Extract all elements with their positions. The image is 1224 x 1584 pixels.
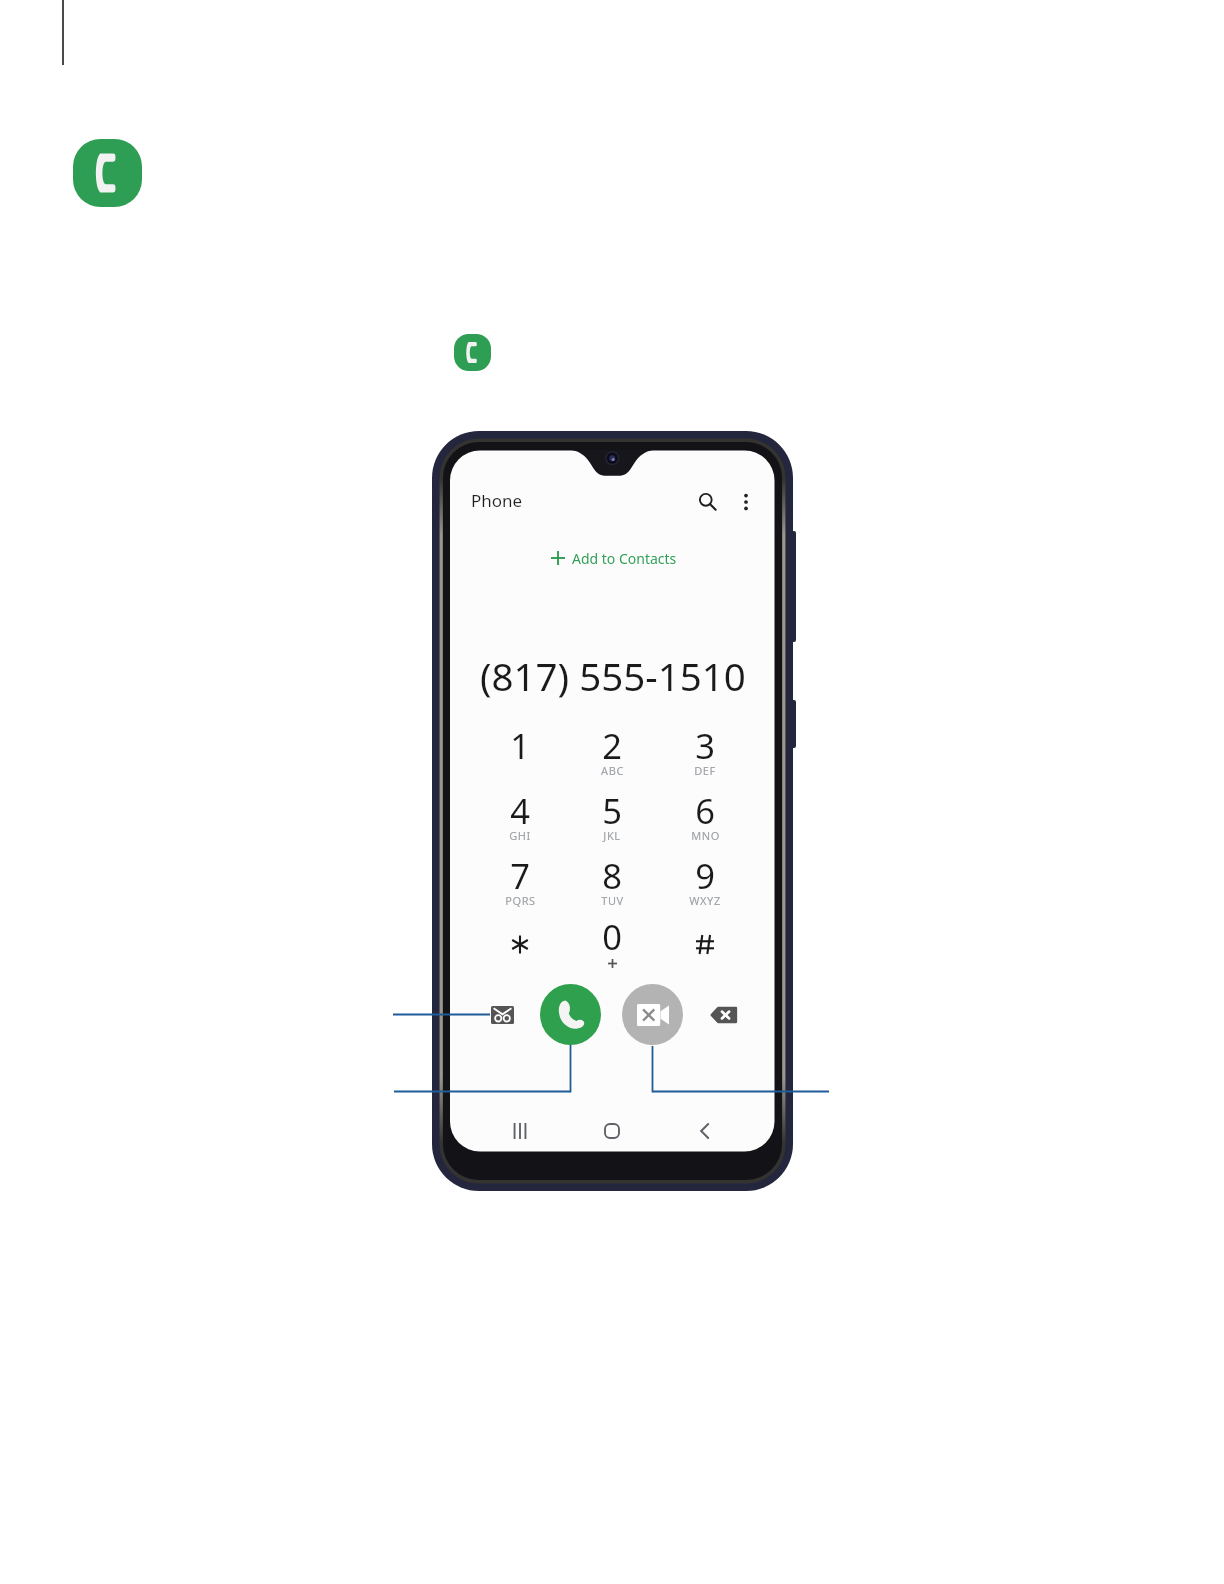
staticText: MNO [691, 828, 720, 843]
button[interactable]: Add to Contacts [551, 545, 677, 571]
button[interactable]: Phone app [454, 334, 491, 371]
button[interactable]: Recents [502, 1113, 538, 1149]
button[interactable]: More options [730, 486, 761, 517]
button[interactable]: 9 [663, 848, 747, 910]
staticText: GHI [509, 828, 531, 843]
staticText: DEF [694, 763, 716, 778]
button[interactable]: 4 [478, 783, 562, 845]
staticText: JKL [603, 828, 621, 843]
button[interactable]: 8 [570, 848, 654, 910]
staticText: 9 [695, 852, 715, 894]
staticText: 4 [510, 787, 530, 829]
button[interactable]: 0 [570, 909, 654, 971]
staticText: PQRS [505, 893, 536, 908]
staticText: 1 [510, 722, 530, 764]
button[interactable]: 7 [478, 848, 562, 910]
staticText: (817) 555-1510 [480, 650, 746, 702]
staticText: Phone [471, 489, 523, 512]
button[interactable]: Phone [471, 487, 523, 513]
staticText: 8 [602, 852, 622, 894]
button[interactable]: 3 [663, 718, 747, 780]
button[interactable]: Backspace [705, 997, 741, 1033]
button[interactable]: Call [540, 984, 601, 1045]
staticText: ABC [601, 763, 624, 778]
button[interactable]: Back [687, 1113, 723, 1149]
button[interactable]: 5 [570, 783, 654, 845]
button[interactable]: Voicemail [484, 997, 520, 1033]
button[interactable]: 6 [663, 783, 747, 845]
button[interactable]: Video call [622, 984, 683, 1045]
staticText: 6 [695, 787, 715, 829]
staticText: 3 [695, 722, 715, 764]
staticText: TUV [601, 893, 624, 908]
button[interactable]: Search [692, 486, 723, 517]
button[interactable]: Phone app [73, 139, 142, 207]
button[interactable]: 2 [570, 718, 654, 780]
button[interactable] [663, 909, 747, 971]
staticText: 2 [602, 722, 622, 764]
staticText: 0 [602, 913, 622, 955]
staticText: WXYZ [689, 893, 721, 908]
button[interactable] [478, 909, 562, 971]
button[interactable]: Home [594, 1113, 630, 1149]
staticText: 7 [510, 852, 530, 894]
staticText: Add to Contacts [572, 549, 677, 568]
button[interactable]: 1 [478, 718, 562, 780]
staticText: 5 [602, 787, 622, 829]
